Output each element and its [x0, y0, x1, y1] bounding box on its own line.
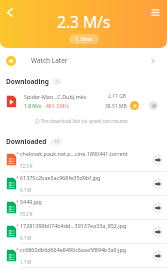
staticText: 481.3 M/s — [46, 103, 69, 110]
button[interactable]: chelovek.pauk.net.p...cine.1890441.torre… — [0, 148, 167, 171]
staticText: Downloaded — [6, 137, 47, 146]
staticText: Watch Later — [31, 56, 68, 65]
button[interactable]: Share — [152, 202, 163, 213]
staticText: 38.51 MB — [105, 103, 127, 110]
button[interactable]: Menu — [147, 4, 164, 21]
staticText: 1 Task — [75, 35, 93, 43]
staticText: 5449.jpg — [20, 198, 42, 205]
button[interactable]: Share — [152, 250, 163, 261]
button[interactable]: 61375c2bae5ac968fe35d9bf.jpg — [0, 172, 167, 195]
staticText: 0.1 M — [20, 187, 32, 193]
staticText: Downloading — [6, 77, 49, 86]
staticText: 0.1 M — [20, 235, 32, 241]
button[interactable]: Share — [152, 226, 163, 237]
button[interactable]: cc6860db6d664e8490c6aae5f894b3a9.jpg — [0, 244, 167, 267]
staticText: Spider-Man...C.Dub).mkv — [24, 93, 105, 100]
staticText: 70.2 K — [20, 211, 33, 217]
button[interactable]: 17281399b074b4dd...39137ea33a_852.jpg — [0, 220, 167, 243]
staticText: 2.17 GB — [108, 93, 127, 100]
button[interactable]: Pause download — [130, 101, 139, 110]
staticText: cc6860db6d664e8490c6aae5f894b3a9.jpg — [20, 246, 127, 253]
staticText: 61375c2bae5ac968fe35d9bf.jpg — [20, 174, 101, 181]
button[interactable]: Share — [152, 178, 163, 189]
button[interactable]: Watch Later — [0, 48, 167, 73]
button[interactable]: Stop download — [149, 101, 158, 110]
staticText: 72.3 K — [20, 163, 33, 169]
staticText: chelovek.pauk.net.p...cine.1890441.torre… — [20, 150, 128, 157]
button[interactable]: Back — [1, 4, 18, 21]
staticText: 2.3 M/s — [57, 11, 111, 32]
staticText: 1 — [56, 79, 59, 85]
staticText: 17281399b074b4dd...39137ea33a_852.jpg — [20, 222, 127, 229]
staticText: 1.1 M — [20, 259, 32, 265]
staticText: 12 — [54, 139, 59, 145]
staticText: 1.8 M/s — [24, 103, 42, 110]
button[interactable]: Spider-Man...C.Dub).mkv — [0, 88, 167, 135]
button[interactable]: 5449.jpg — [0, 196, 167, 219]
button[interactable]: Share — [152, 154, 163, 165]
staticText: ⓘ The download link via speed not resume — [35, 118, 128, 124]
